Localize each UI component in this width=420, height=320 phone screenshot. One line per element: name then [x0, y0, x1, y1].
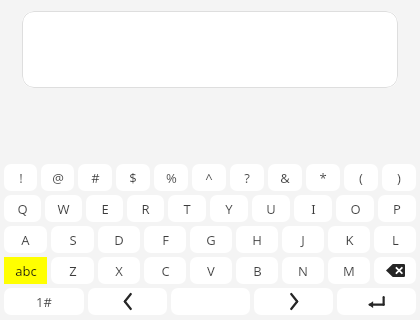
- button[interactable]: Next: [254, 288, 333, 315]
- button[interactable]: %: [154, 164, 188, 191]
- button[interactable]: !: [4, 164, 37, 191]
- staticText: H: [252, 231, 262, 249]
- button[interactable]: [22, 11, 398, 88]
- staticText: L: [392, 231, 399, 249]
- button[interactable]: Enter: [337, 288, 416, 315]
- staticText: N: [298, 262, 308, 280]
- staticText: A: [21, 231, 30, 249]
- button[interactable]: U: [252, 195, 290, 222]
- button[interactable]: M: [328, 257, 370, 284]
- staticText: !: [19, 169, 23, 187]
- button[interactable]: 1#: [4, 288, 84, 315]
- button[interactable]: L: [374, 226, 416, 253]
- staticText: C: [161, 262, 170, 280]
- button[interactable]: B: [236, 257, 278, 284]
- staticText: V: [207, 262, 215, 280]
- button[interactable]: #: [78, 164, 112, 191]
- staticText: U: [266, 200, 276, 218]
- staticText: @: [52, 169, 64, 187]
- staticText: R: [141, 200, 150, 218]
- staticText: X: [115, 262, 123, 280]
- staticText: 1#: [36, 293, 52, 311]
- staticText: (: [359, 169, 363, 187]
- staticText: ): [397, 169, 401, 187]
- button[interactable]: R: [127, 195, 164, 222]
- staticText: D: [114, 231, 124, 249]
- staticText: J: [301, 231, 305, 249]
- staticText: G: [206, 231, 216, 249]
- staticText: ^: [205, 169, 213, 187]
- button[interactable]: T: [168, 195, 206, 222]
- button[interactable]: F: [144, 226, 186, 253]
- button[interactable]: J: [282, 226, 324, 253]
- staticText: K: [345, 231, 354, 249]
- staticText: P: [393, 200, 401, 218]
- staticText: %: [166, 169, 177, 187]
- button[interactable]: Z: [51, 257, 94, 284]
- staticText: I: [311, 200, 316, 218]
- button[interactable]: V: [190, 257, 232, 284]
- button[interactable]: @: [41, 164, 74, 191]
- staticText: S: [69, 231, 77, 249]
- button[interactable]: *: [306, 164, 340, 191]
- button[interactable]: W: [45, 195, 82, 222]
- button[interactable]: N: [282, 257, 324, 284]
- button[interactable]: Previous: [88, 288, 167, 315]
- button[interactable]: E: [86, 195, 123, 222]
- button[interactable]: C: [144, 257, 186, 284]
- button[interactable]: K: [328, 226, 370, 253]
- button[interactable]: I: [294, 195, 332, 222]
- button[interactable]: ): [382, 164, 416, 191]
- button[interactable]: $: [116, 164, 150, 191]
- button[interactable]: Q: [4, 195, 41, 222]
- button[interactable]: (: [344, 164, 378, 191]
- button[interactable]: ^: [192, 164, 226, 191]
- staticText: $: [129, 169, 137, 187]
- staticText: B: [253, 262, 262, 280]
- button[interactable]: Backspace: [374, 257, 416, 284]
- staticText: &: [280, 169, 290, 187]
- staticText: M: [343, 262, 355, 280]
- staticText: Y: [225, 200, 233, 218]
- staticText: E: [101, 200, 109, 218]
- staticText: W: [57, 200, 70, 218]
- button[interactable]: A: [4, 226, 47, 253]
- button[interactable]: D: [98, 226, 140, 253]
- button[interactable]: P: [378, 195, 416, 222]
- staticText: *: [319, 169, 327, 187]
- button[interactable]: abc: [4, 257, 47, 284]
- staticText: #: [91, 169, 100, 187]
- staticText: Q: [17, 200, 28, 218]
- button[interactable]: &: [268, 164, 302, 191]
- staticText: F: [162, 231, 169, 249]
- staticText: T: [183, 200, 191, 218]
- staticText: O: [350, 200, 361, 218]
- staticText: Z: [69, 262, 77, 280]
- staticText: ?: [244, 169, 250, 187]
- button[interactable]: X: [98, 257, 140, 284]
- button[interactable]: G: [190, 226, 232, 253]
- button[interactable]: S: [51, 226, 94, 253]
- button[interactable]: H: [236, 226, 278, 253]
- button[interactable]: ?: [230, 164, 264, 191]
- button[interactable]: Y: [210, 195, 248, 222]
- staticText: abc: [15, 262, 37, 280]
- button[interactable]: O: [336, 195, 374, 222]
